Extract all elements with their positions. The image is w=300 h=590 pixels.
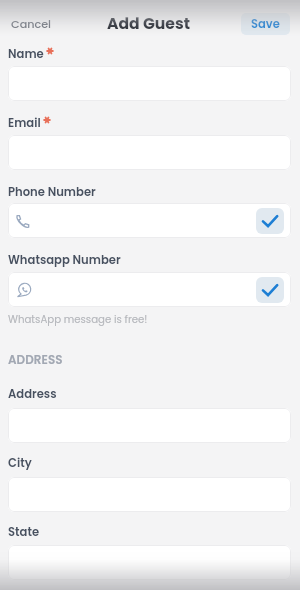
button[interactable] <box>8 477 291 512</box>
button[interactable] <box>8 135 291 170</box>
button[interactable]: Verify number <box>256 208 284 234</box>
button[interactable]: Verify number <box>8 272 291 307</box>
staticText: Whatsapp Number <box>8 252 121 268</box>
button[interactable] <box>8 66 291 101</box>
button[interactable]: Verify number <box>8 203 291 238</box>
staticText: Name <box>8 46 44 62</box>
button[interactable]: Save <box>241 13 290 35</box>
staticText: Add Guest <box>107 13 191 35</box>
staticText: WhatsApp message is free! <box>8 312 148 326</box>
button[interactable]: Cancel <box>5 11 58 37</box>
staticText: ADDRESS <box>8 352 63 369</box>
staticText: Cancel <box>11 16 52 32</box>
button[interactable] <box>8 545 291 580</box>
staticText: Save <box>251 16 280 32</box>
staticText: Email <box>8 115 41 131</box>
staticText: Phone Number <box>8 184 96 200</box>
staticText: State <box>8 524 40 540</box>
staticText: City <box>8 455 32 471</box>
button[interactable]: Verify number <box>256 277 284 303</box>
staticText: Address <box>8 386 57 402</box>
button[interactable] <box>8 408 291 443</box>
